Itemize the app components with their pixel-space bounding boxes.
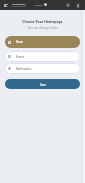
staticText: Account — [34, 4, 43, 7]
staticText: You can change it later — [28, 26, 58, 30]
button[interactable]: Profile — [44, 3, 47, 6]
button[interactable]: Events — [5, 51, 80, 62]
staticText: Events — [16, 55, 25, 59]
staticText: Municipality — [12, 2, 26, 5]
button[interactable]: Notifications — [64, 1, 72, 9]
button[interactable]: News — [5, 36, 80, 48]
button[interactable]: Menu — [1, 0, 10, 10]
staticText: News — [16, 40, 23, 44]
button[interactable]: Save — [5, 79, 80, 89]
staticText: Riyadh Region — [12, 5, 27, 8]
button[interactable]: Notifications — [5, 63, 80, 74]
button[interactable]: Account — [74, 1, 82, 9]
staticText: Save — [40, 83, 46, 87]
staticText: Notifications — [16, 67, 32, 71]
staticText: Choose Your Homepage — [22, 19, 63, 24]
